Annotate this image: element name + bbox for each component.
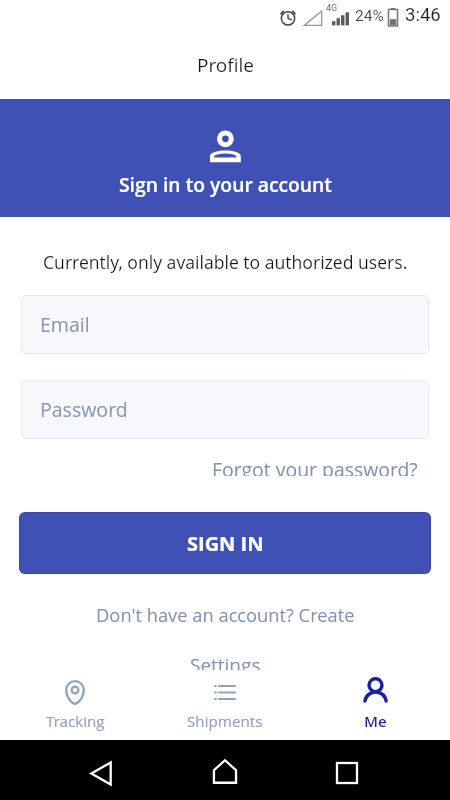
button[interactable]: Email: [21, 295, 429, 354]
staticText: Email: [40, 311, 90, 338]
staticText: Sign in to your account: [119, 171, 332, 197]
staticText: 24%: [355, 7, 384, 25]
button[interactable]: Me: [300, 670, 450, 740]
button[interactable]: Home: [198, 746, 252, 796]
staticText: Don't have an account? Create: [96, 602, 355, 622]
staticText: Tracking: [46, 711, 105, 732]
staticText: Me: [364, 711, 387, 732]
staticText: Password: [40, 396, 128, 423]
button[interactable]: Shipments: [150, 670, 300, 740]
button[interactable]: Back: [74, 748, 127, 798]
button[interactable]: Settings: [174, 648, 277, 676]
button[interactable]: Don't have an account? Create: [80, 598, 371, 626]
staticText: 3:46: [405, 4, 441, 26]
button[interactable]: SIGN IN: [20, 513, 430, 573]
staticText: Profile: [197, 52, 254, 78]
staticText: Shipments: [187, 711, 263, 732]
staticText: Forgot your password?: [212, 456, 418, 476]
button[interactable]: Tracking: [0, 670, 150, 740]
button[interactable]: Recents: [321, 748, 373, 798]
button[interactable]: Password: [21, 380, 429, 439]
staticText: Settings: [190, 652, 261, 672]
staticText: 4G: [326, 3, 338, 14]
button[interactable]: Forgot your password?: [192, 452, 450, 480]
staticText: SIGN IN: [187, 530, 264, 557]
staticText: Currently, only available to authorized …: [43, 250, 408, 274]
